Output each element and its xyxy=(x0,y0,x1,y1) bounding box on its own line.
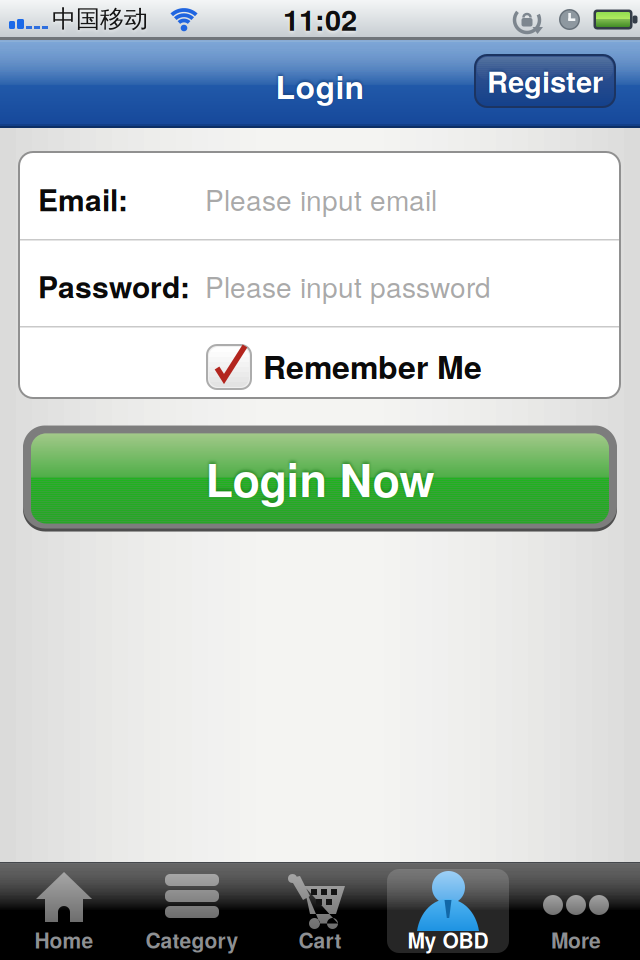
button[interactable]: My OBD xyxy=(384,862,512,960)
staticText: 中国移动 xyxy=(52,4,148,34)
staticText: Category xyxy=(145,925,238,955)
button[interactable]: Remember Me xyxy=(19,326,620,398)
button[interactable]: Register xyxy=(474,54,616,108)
staticText: Please input email xyxy=(205,179,437,219)
staticText: Login Now xyxy=(205,446,434,511)
staticText: Remember Me xyxy=(263,343,482,389)
staticText: 11:02 xyxy=(283,0,357,40)
staticText: My OBD xyxy=(407,925,488,955)
button[interactable]: Email: xyxy=(19,152,620,239)
staticText: Login xyxy=(275,63,364,109)
button[interactable]: Cart xyxy=(256,862,384,960)
staticText: Cart xyxy=(298,925,341,955)
button[interactable]: Login Now xyxy=(23,424,617,530)
button[interactable]: More xyxy=(512,862,640,960)
staticText: Password: xyxy=(38,264,190,307)
staticText: Home xyxy=(34,925,93,955)
staticText: More xyxy=(551,925,601,955)
button[interactable]: Category xyxy=(128,862,256,960)
staticText: Please input password xyxy=(205,266,491,306)
button[interactable]: Home xyxy=(0,862,128,960)
button[interactable]: Password: xyxy=(19,239,620,326)
staticText: Register xyxy=(487,60,603,102)
staticText: Email: xyxy=(38,177,128,220)
